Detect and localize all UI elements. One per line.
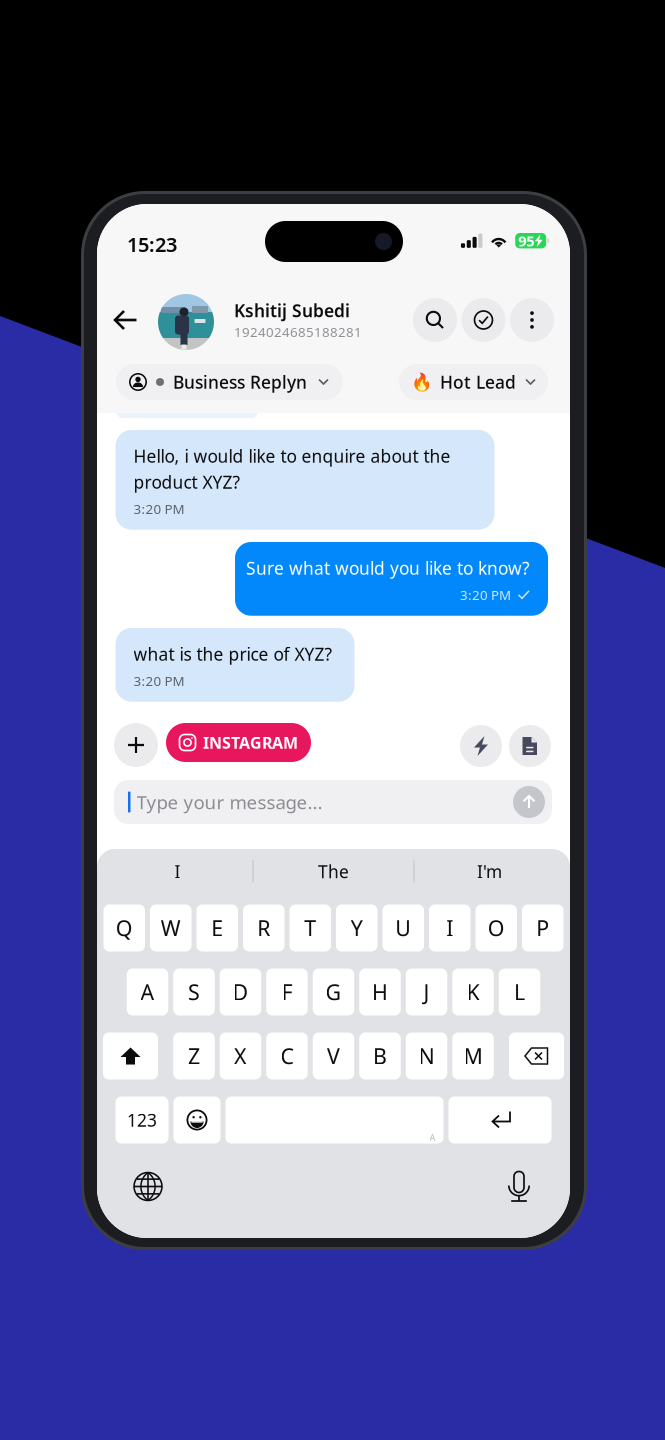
staticText: S — [188, 978, 200, 1006]
staticText: O — [488, 914, 505, 942]
staticText: Type your message... — [136, 790, 322, 814]
button[interactable]: M — [452, 1032, 494, 1079]
button[interactable]: Add attachment — [114, 723, 158, 767]
staticText: U — [395, 914, 411, 942]
button[interactable]: S — [173, 968, 215, 1015]
staticText: Q — [116, 914, 133, 942]
button[interactable]: Business Replyn — [116, 364, 343, 400]
button[interactable]: T — [289, 904, 331, 951]
button[interactable]: W — [150, 904, 191, 951]
button[interactable]: Type your message... — [114, 780, 552, 824]
button[interactable]: 🔥 — [399, 364, 548, 400]
staticText: 15:23 — [127, 231, 177, 258]
button[interactable]: N — [406, 1032, 447, 1079]
button[interactable]: P — [522, 904, 563, 951]
staticText: V — [327, 1042, 340, 1070]
button[interactable]: D — [220, 968, 261, 1015]
staticText: The — [318, 860, 349, 883]
button[interactable]: L — [499, 968, 540, 1015]
staticText: W — [161, 914, 181, 942]
button[interactable]: The — [253, 849, 413, 893]
button[interactable]: O — [475, 904, 517, 951]
staticText: D — [232, 978, 248, 1006]
button[interactable]: Search — [413, 298, 457, 342]
staticText: A — [429, 1131, 435, 1143]
button[interactable]: 123 — [115, 1096, 168, 1143]
staticText: product XYZ? — [133, 470, 240, 493]
button[interactable]: Delete — [509, 1032, 564, 1079]
staticText: M — [463, 1042, 482, 1070]
staticText: 123 — [127, 1108, 157, 1131]
button[interactable]: Switch keyboard — [126, 1164, 170, 1208]
staticText: Business Replyn — [173, 370, 307, 393]
staticText: T — [304, 914, 316, 942]
staticText: 🔥 — [411, 372, 433, 392]
staticText: Sure what would you like to know? — [246, 556, 530, 579]
staticText: I — [446, 914, 453, 942]
staticText: Kshitij Subedi — [234, 299, 350, 322]
staticText: L — [514, 978, 525, 1006]
button[interactable]: Space — [225, 1096, 443, 1143]
staticText: 1924024685188281 — [234, 323, 362, 341]
staticText: K — [466, 978, 479, 1006]
staticText: what is the price of XYZ? — [133, 642, 332, 665]
button[interactable]: F — [266, 968, 308, 1015]
staticText: J — [423, 978, 429, 1006]
button[interactable]: Back — [103, 297, 149, 343]
button[interactable]: Templates — [509, 725, 551, 767]
staticText: 95 — [518, 231, 534, 250]
staticText: A — [140, 978, 154, 1006]
staticText: R — [257, 914, 270, 942]
staticText: E — [211, 914, 223, 942]
button[interactable]: Shift — [103, 1032, 158, 1079]
staticText: C — [280, 1042, 293, 1070]
button[interactable]: Return — [448, 1096, 551, 1143]
staticText: N — [418, 1042, 434, 1070]
button[interactable]: Y — [336, 904, 377, 951]
staticText: B — [373, 1042, 387, 1070]
staticText: INSTAGRAM — [203, 732, 298, 753]
button[interactable]: K — [452, 968, 494, 1015]
button[interactable]: B — [359, 1032, 401, 1079]
staticText: Hot Lead — [440, 370, 516, 393]
staticText: Y — [351, 914, 363, 942]
staticText: 3:20 PM — [133, 500, 184, 518]
button[interactable]: V — [313, 1032, 354, 1079]
button[interactable]: Q — [103, 904, 145, 951]
button[interactable]: C — [266, 1032, 308, 1079]
staticText: 3:20 PM — [460, 586, 511, 604]
button[interactable]: I'm — [414, 849, 564, 893]
staticText: Z — [188, 1042, 200, 1070]
button[interactable]: I — [102, 849, 252, 893]
button[interactable]: Quick reply — [460, 725, 502, 767]
button[interactable]: I — [429, 904, 470, 951]
staticText: G — [325, 978, 341, 1006]
button[interactable]: INSTAGRAM — [166, 723, 311, 762]
staticText: H — [372, 978, 388, 1006]
staticText: I'm — [477, 860, 502, 883]
staticText: Hello, i would like to enquire about the — [133, 444, 450, 467]
button[interactable]: Dictate — [497, 1164, 541, 1208]
button[interactable]: E — [196, 904, 238, 951]
staticText: 3:20 PM — [133, 672, 184, 690]
button[interactable]: More options — [510, 298, 554, 342]
button[interactable]: H — [359, 968, 401, 1015]
button[interactable]: J — [406, 968, 447, 1015]
button[interactable]: Mark as done — [461, 298, 505, 342]
button[interactable]: Emoji — [173, 1096, 220, 1143]
button[interactable]: R — [243, 904, 284, 951]
button[interactable]: A — [127, 968, 168, 1015]
staticText: X — [234, 1042, 247, 1070]
button[interactable]: U — [382, 904, 424, 951]
button[interactable]: X — [220, 1032, 261, 1079]
staticText: I — [174, 860, 180, 883]
staticText: P — [536, 914, 549, 942]
staticText: F — [281, 978, 292, 1006]
button[interactable]: G — [313, 968, 354, 1015]
button[interactable]: Z — [173, 1032, 215, 1079]
